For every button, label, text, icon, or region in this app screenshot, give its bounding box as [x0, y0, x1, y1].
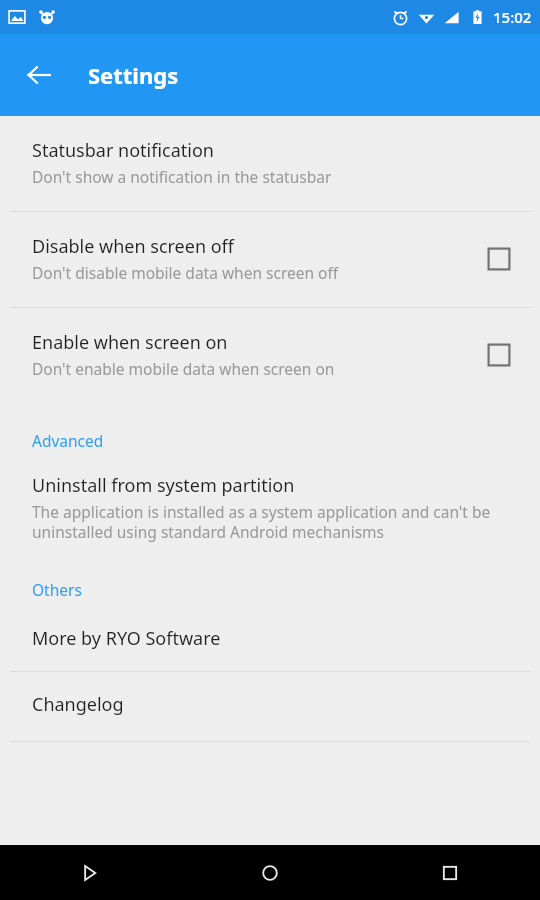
staticText: Statusbar notification	[32, 138, 214, 163]
staticText: Enable when screen on	[32, 330, 228, 355]
staticText: Advanced	[32, 430, 540, 451]
button[interactable]: Home	[180, 845, 360, 900]
staticText: Don't show a notification in the statusb…	[32, 166, 332, 187]
button[interactable]: Enable when screen on	[0, 308, 540, 403]
staticText: Don't disable mobile data when screen of…	[32, 262, 339, 283]
staticText: Disable when screen off	[32, 234, 234, 259]
button[interactable]: Back	[0, 845, 180, 900]
staticText: Others	[32, 579, 540, 600]
button[interactable]: Uninstall from system partition	[0, 463, 540, 553]
button[interactable]: Back	[15, 51, 63, 99]
button[interactable]: Statusbar notification	[0, 116, 540, 211]
button[interactable]: Recent apps	[360, 845, 540, 900]
button[interactable]: Changelog	[0, 672, 540, 741]
staticText: Don't enable mobile data when screen on	[32, 358, 335, 379]
staticText: Uninstall from system partition	[32, 473, 295, 498]
staticText: Changelog	[32, 692, 124, 717]
button[interactable]: More by RYO Software	[0, 612, 540, 671]
staticText: 15:02	[493, 7, 532, 27]
button[interactable]: Disable when screen off	[0, 212, 540, 307]
staticText: Settings	[88, 60, 179, 90]
staticText: More by RYO Software	[32, 626, 221, 651]
staticText: The application is installed as a system…	[32, 501, 512, 543]
